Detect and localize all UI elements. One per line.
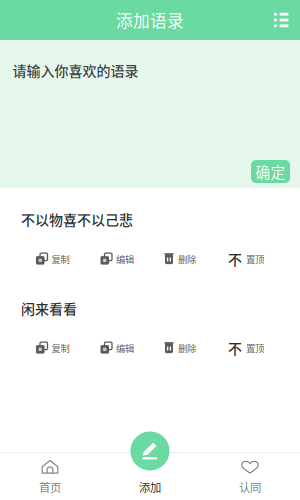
button[interactable]: 不 (228, 249, 264, 269)
staticText: 认同 (239, 479, 261, 495)
button[interactable]: 添加 (130, 431, 169, 470)
staticText: 不 (228, 338, 242, 358)
staticText: 置顶 (246, 341, 264, 355)
staticText: 添加语录 (116, 8, 184, 32)
staticText: 置顶 (246, 252, 264, 266)
button[interactable]: 删除 (164, 341, 196, 355)
button[interactable]: 复制 (36, 252, 69, 266)
button[interactable]: 首页 (0, 449, 100, 500)
staticText: 添加 (139, 479, 161, 495)
staticText: 复制 (51, 252, 69, 266)
button[interactable]: 不 (228, 338, 264, 358)
staticText: 编辑 (116, 252, 134, 266)
button[interactable]: 列表 (262, 1, 300, 39)
staticText: 复制 (51, 341, 69, 355)
button[interactable]: 复制 (36, 341, 69, 355)
staticText: 请输入你喜欢的语录 (12, 60, 138, 80)
staticText: 不 (228, 249, 242, 269)
staticText: 首页 (39, 479, 61, 495)
button[interactable]: 认同 (200, 449, 300, 500)
button[interactable]: 删除 (164, 252, 196, 266)
staticText: 删除 (178, 252, 196, 266)
staticText: 确定 (255, 161, 285, 182)
button[interactable]: 添加 (100, 449, 200, 500)
staticText: 删除 (178, 341, 196, 355)
staticText: 不以物喜不以己悲 (21, 209, 133, 229)
button[interactable]: 编辑 (100, 341, 134, 355)
button[interactable]: 确定 (251, 160, 290, 183)
button[interactable]: 编辑 (100, 252, 134, 266)
staticText: 编辑 (116, 341, 134, 355)
staticText: 闲来看看 (21, 298, 77, 318)
